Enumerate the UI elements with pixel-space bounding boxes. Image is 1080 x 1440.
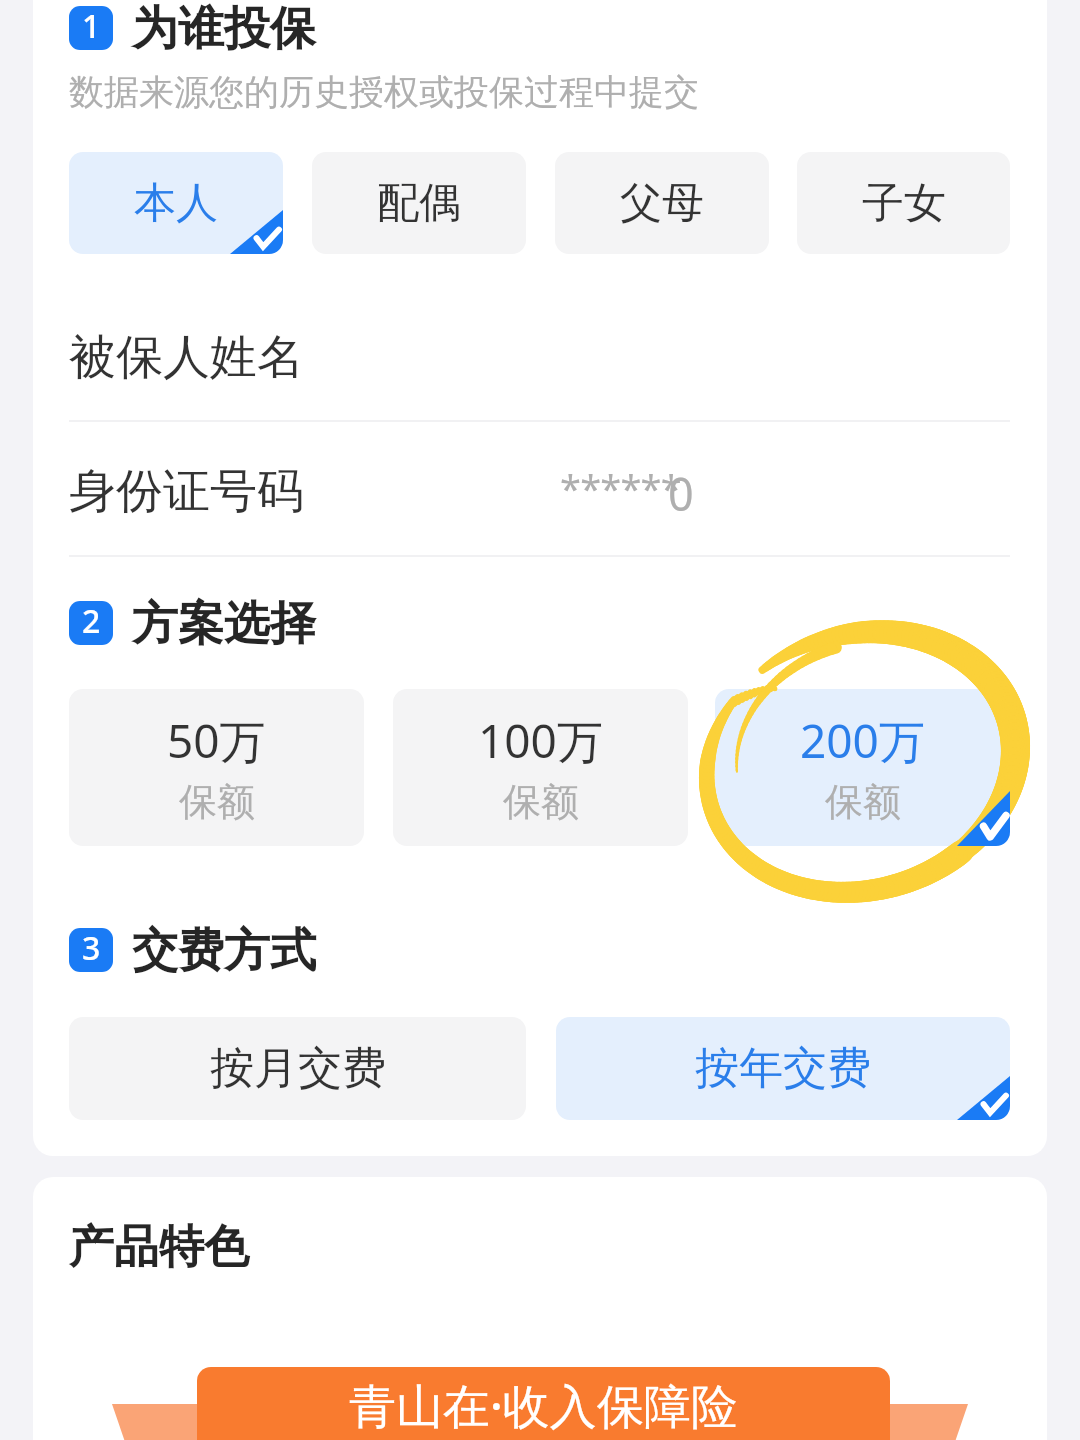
staticText: 数据来源您的历史授权或投保过程中提交 bbox=[69, 70, 699, 114]
other: 200万保额 已选中 bbox=[715, 689, 1010, 846]
button[interactable]: 青山在·收入保障险 bbox=[197, 1367, 890, 1440]
staticText: 50万 bbox=[167, 709, 266, 772]
staticText: 按月交费 bbox=[210, 1041, 386, 1096]
staticText: 保额 bbox=[503, 778, 579, 826]
staticText: 为谁投保 bbox=[132, 0, 316, 58]
button[interactable]: 被保人姓名 bbox=[69, 298, 1010, 417]
staticText: 2 bbox=[82, 601, 101, 643]
staticText: 1 bbox=[82, 6, 101, 48]
button[interactable]: 按月交费 bbox=[69, 1017, 526, 1120]
staticText: 子女 bbox=[862, 177, 946, 230]
staticText: 方案选择 bbox=[132, 595, 316, 653]
staticText: 保额 bbox=[179, 778, 255, 826]
button[interactable]: 50万 bbox=[69, 689, 364, 846]
button[interactable]: 本人 bbox=[69, 152, 283, 254]
staticText: 0 bbox=[668, 463, 694, 524]
button[interactable]: 配偶 bbox=[312, 152, 526, 254]
staticText: 100万 bbox=[478, 709, 603, 772]
button[interactable]: 子女 bbox=[797, 152, 1010, 254]
button[interactable]: 100万 bbox=[393, 689, 688, 846]
staticText: 按年交费 bbox=[695, 1041, 871, 1096]
staticText: 产品特色 bbox=[69, 1219, 249, 1276]
staticText: 被保人姓名 bbox=[69, 328, 304, 387]
staticText: 保额 bbox=[825, 778, 901, 826]
staticText: ****** bbox=[560, 462, 681, 514]
staticText: 青山在·收入保障险 bbox=[349, 1373, 738, 1437]
staticText: 配偶 bbox=[377, 177, 461, 230]
button[interactable]: 200万 bbox=[715, 689, 1010, 846]
button[interactable]: 身份证号码 bbox=[69, 424, 1010, 558]
staticText: 父母 bbox=[620, 177, 704, 230]
button[interactable]: 父母 bbox=[555, 152, 769, 254]
staticText: 200万 bbox=[800, 709, 925, 772]
staticText: 3 bbox=[82, 928, 101, 970]
staticText: 身份证号码 bbox=[69, 462, 304, 521]
staticText: 交费方式 bbox=[132, 922, 316, 980]
staticText: 本人 bbox=[134, 177, 218, 230]
button[interactable]: 按年交费 bbox=[556, 1017, 1010, 1120]
